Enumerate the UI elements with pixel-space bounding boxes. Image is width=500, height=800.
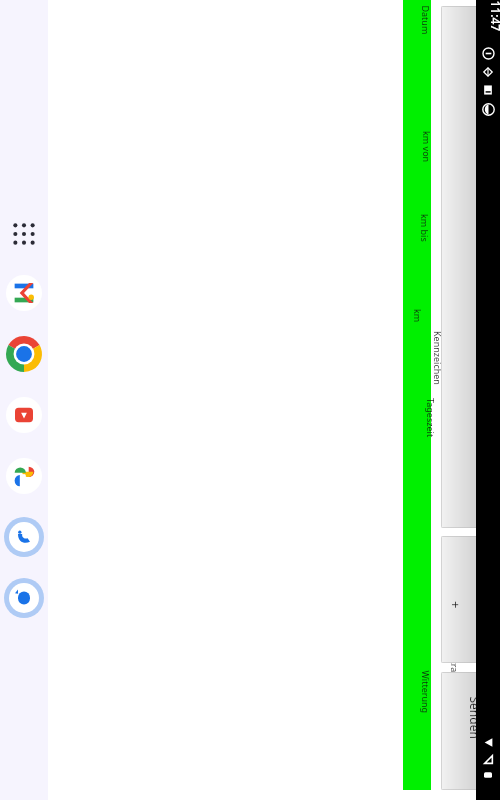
staticText: Straßenzustand / (448, 655, 460, 728)
button[interactable]: Kennzeichen (403, 352, 431, 406)
button[interactable]: Senden (441, 672, 481, 790)
button[interactable]: Chrome (4, 334, 44, 374)
staticText: km bis (419, 214, 431, 242)
staticText: Witterung (419, 670, 431, 713)
button[interactable]: Photos (4, 456, 44, 496)
staticText: 11:47 (487, 0, 500, 31)
button[interactable]: Home (476, 752, 500, 766)
button[interactable]: km von (403, 141, 431, 173)
button[interactable]: YouTube (4, 395, 44, 435)
button[interactable]: Phone (4, 517, 44, 557)
staticText: Datum (419, 5, 431, 34)
button[interactable]: Messages (4, 578, 44, 618)
button[interactable]: Datum (403, 14, 431, 43)
button[interactable]: All apps (6, 216, 42, 252)
button[interactable]: L (Duale Ausbildung) (441, 6, 481, 528)
staticText: Fahrtstrecke / ziel (442, 437, 454, 512)
staticText: Tageszeit (425, 398, 437, 438)
button[interactable]: + (441, 536, 481, 663)
button[interactable]: Tageszeit (403, 412, 431, 452)
staticText: Senden (466, 696, 481, 739)
staticText: + (447, 601, 465, 609)
button[interactable]: Recent apps (476, 769, 500, 781)
staticText: km von (421, 131, 433, 163)
button[interactable]: km bis (403, 222, 431, 250)
button[interactable]: Gmail (4, 273, 44, 313)
staticText: km (412, 309, 424, 323)
staticText: Kennzeichen (432, 331, 444, 385)
button[interactable]: Back (476, 735, 500, 749)
button[interactable]: km (403, 310, 431, 324)
